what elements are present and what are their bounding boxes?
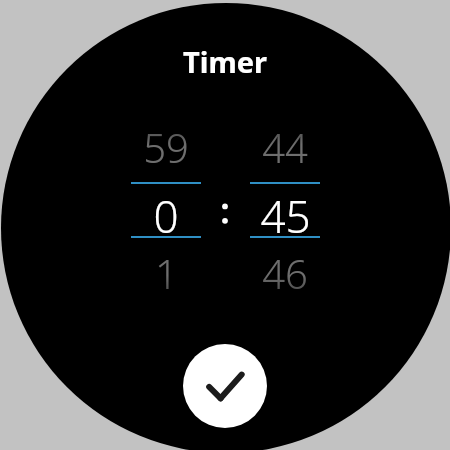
- staticText: 59: [143, 120, 189, 174]
- staticText: 0: [153, 186, 179, 236]
- button[interactable]: Minutes picker: [120, 118, 212, 303]
- button[interactable]: Seconds picker: [239, 118, 331, 303]
- staticText: 44: [262, 120, 308, 174]
- staticText: 45: [260, 186, 311, 236]
- button[interactable]: Confirm timer: [183, 344, 267, 428]
- staticText: 1: [155, 246, 178, 300]
- staticText: Timer: [183, 42, 267, 81]
- staticText: 46: [262, 246, 308, 300]
